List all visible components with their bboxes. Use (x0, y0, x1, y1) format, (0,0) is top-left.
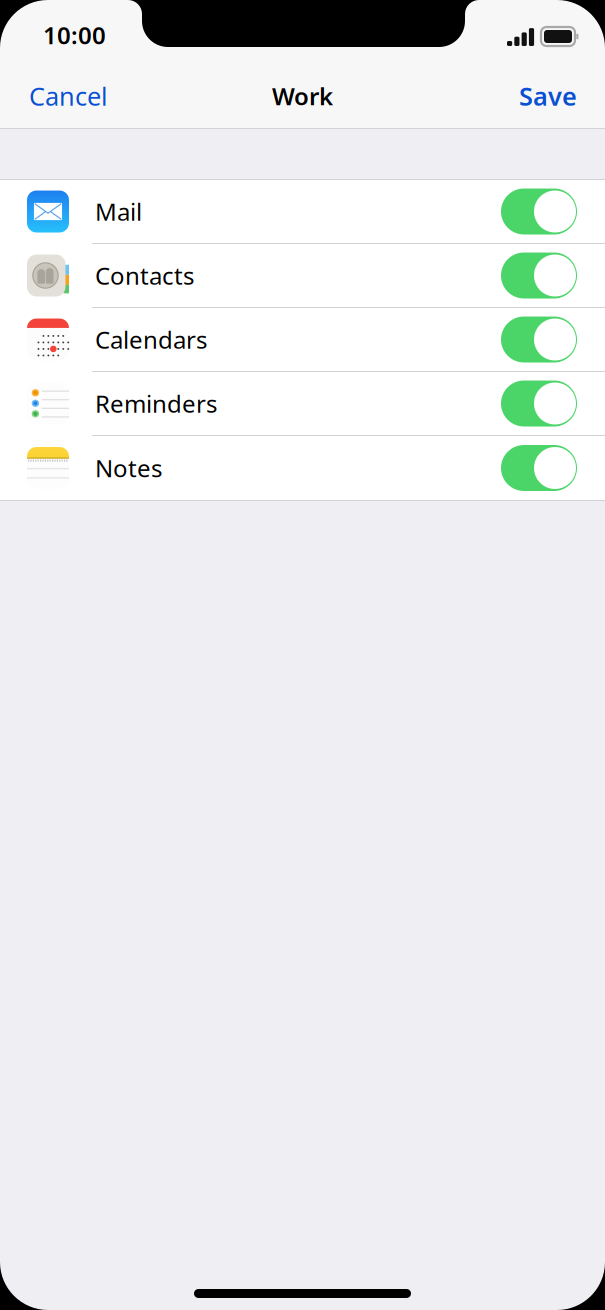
button[interactable]: Mail (0, 180, 605, 244)
staticText: Mail (95, 196, 142, 227)
staticText: Contacts (95, 260, 194, 291)
staticText: Save (519, 79, 577, 113)
button[interactable]: Contacts (0, 244, 605, 308)
staticText: 10:00 (43, 19, 106, 51)
button[interactable]: Notes (0, 436, 605, 500)
staticText: Work (272, 80, 333, 112)
button[interactable]: Calendars (0, 308, 605, 372)
staticText: Reminders (95, 388, 217, 419)
staticText: Calendars (95, 324, 207, 355)
button[interactable]: Cancel (0, 70, 126, 128)
button[interactable]: Save (501, 70, 605, 128)
button[interactable]: Reminders (0, 372, 605, 436)
staticText: Notes (95, 452, 162, 484)
staticText: Cancel (29, 79, 108, 113)
